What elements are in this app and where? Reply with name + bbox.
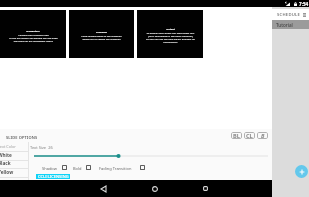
staticText: SCHEDULE bbox=[277, 12, 301, 18]
button[interactable]: B bbox=[257, 132, 268, 139]
staticText: CL bbox=[246, 132, 253, 139]
button[interactable]: Navigation bbox=[0, 10, 66, 58]
button[interactable]: Shadow bbox=[62, 165, 67, 170]
staticText: Navigation bbox=[26, 29, 40, 32]
button[interactable]: CCLI LICENSING bbox=[36, 174, 70, 179]
staticText: Fading Transition bbox=[99, 166, 132, 171]
staticText: Text Size 26 bbox=[30, 145, 53, 150]
button[interactable]: Bold bbox=[86, 165, 91, 170]
staticText: SLIDE OPTIONS bbox=[6, 135, 38, 140]
button[interactable]: Overflow menu bbox=[301, 11, 308, 18]
staticText: BL bbox=[233, 132, 240, 139]
staticText: Yellow bbox=[0, 169, 14, 175]
staticText: CCLI LICENSING bbox=[38, 174, 69, 179]
button[interactable]: Schedule bbox=[69, 10, 134, 58]
button[interactable]: BL bbox=[231, 132, 242, 139]
staticText: Text Color bbox=[0, 144, 16, 149]
staticText: B bbox=[261, 132, 265, 139]
button[interactable]: Back bbox=[95, 180, 112, 197]
staticText: Schedule bbox=[96, 30, 107, 33]
button[interactable]: Tutorial bbox=[272, 20, 309, 29]
staticText: 7:54 bbox=[299, 1, 309, 7]
button[interactable]: Add bbox=[295, 165, 308, 178]
button[interactable]: Output bbox=[137, 10, 203, 58]
button[interactable]: Fading Transition bbox=[140, 165, 145, 170]
staticText: To display your songs you need video out… bbox=[146, 31, 195, 43]
button[interactable]: CL bbox=[244, 132, 255, 139]
button[interactable]: Recent apps bbox=[197, 180, 214, 197]
staticText: Bold bbox=[73, 166, 82, 171]
staticText: White bbox=[0, 152, 12, 158]
staticText: Black bbox=[0, 160, 11, 166]
staticText: Long clicking items in the schedule allo… bbox=[81, 34, 122, 40]
staticText: Output bbox=[166, 27, 175, 30]
staticText: Tutorial bbox=[276, 22, 293, 28]
button[interactable]: Home bbox=[146, 180, 163, 197]
staticText: Shadow bbox=[42, 166, 57, 171]
staticText: Clicking the LyricsPro logo in the top c… bbox=[9, 33, 58, 42]
